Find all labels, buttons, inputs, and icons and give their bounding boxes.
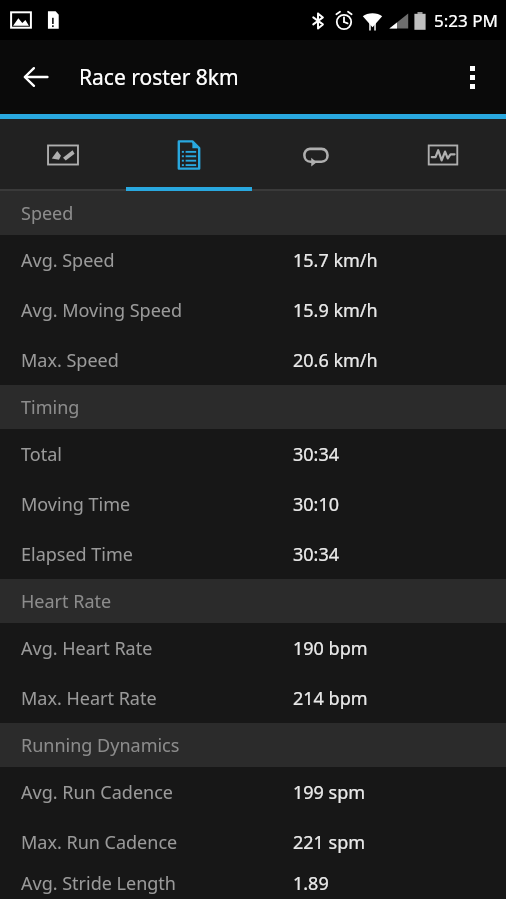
staticText: 214 bpm [293,686,368,711]
staticText: 190 bpm [293,636,368,661]
button[interactable]: Max. Heart Rate [0,673,506,723]
staticText: 30:34 [293,442,340,467]
button[interactable]: More options [446,51,498,103]
button[interactable]: Total [0,429,506,479]
button[interactable]: Avg. Run Cadence [0,767,506,817]
staticText: Race roster 8km [79,63,239,92]
staticText: Max. Run Cadence [21,830,293,855]
staticText: Moving Time [21,492,293,517]
button[interactable]: Max. Speed [0,335,506,385]
button[interactable]: Avg. Speed [0,235,506,285]
button[interactable]: Map [0,119,126,191]
staticText: 20.6 km/h [293,348,378,373]
staticText: Avg. Moving Speed [21,298,293,323]
staticText: 199 spm [293,780,366,805]
button[interactable]: Charts [379,119,506,191]
button[interactable]: Elapsed Time [0,529,506,579]
staticText: Max. Speed [21,348,293,373]
staticText: Speed [21,201,74,226]
staticText: Total [21,442,293,467]
staticText: 1.89 [293,871,329,896]
button[interactable]: Avg. Stride Length [0,867,506,899]
button[interactable]: Back [10,51,62,103]
staticText: Max. Heart Rate [21,686,293,711]
staticText: 30:10 [293,492,340,517]
staticText: 30:34 [293,542,340,567]
staticText: 15.9 km/h [293,298,378,323]
button[interactable]: Details [126,119,252,191]
staticText: Avg. Run Cadence [21,780,293,805]
staticText: Avg. Stride Length [21,871,293,896]
button[interactable]: Max. Run Cadence [0,817,506,867]
button[interactable]: Avg. Moving Speed [0,285,506,335]
button[interactable]: Avg. Heart Rate [0,623,506,673]
staticText: 15.7 km/h [293,248,378,273]
staticText: Avg. Speed [21,248,293,273]
staticText: Elapsed Time [21,542,293,567]
staticText: Heart Rate [21,589,112,614]
staticText: Timing [21,395,80,420]
button[interactable]: Laps [252,119,379,191]
staticText: Running Dynamics [21,733,180,758]
staticText: 5:23 PM [434,9,498,32]
staticText: 221 spm [293,830,366,855]
staticText: Avg. Heart Rate [21,636,293,661]
button[interactable]: Moving Time [0,479,506,529]
